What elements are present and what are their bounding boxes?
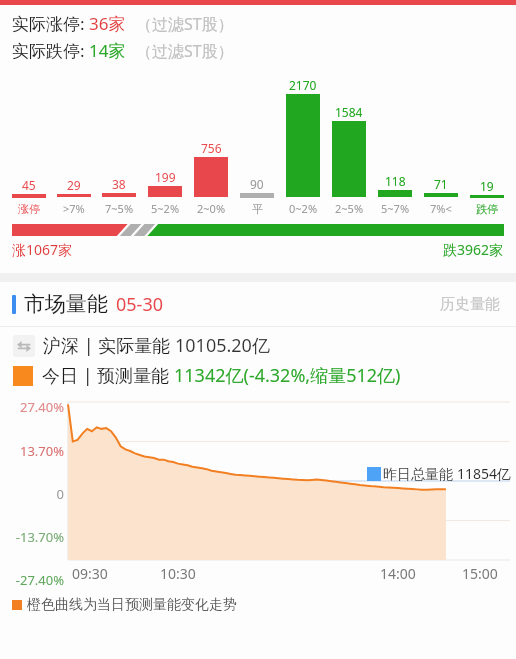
staticText: 199 [155,169,176,185]
staticText: 市场量能 [24,291,108,317]
staticText: 实际涨停: [12,12,89,35]
staticText: 涨停 [18,202,40,216]
staticText: 0~2% [289,201,318,216]
staticText: 15:00 [462,564,498,583]
staticText: 5~7% [381,201,410,216]
staticText: 今日 | 预测量能 [42,363,174,388]
staticText: 0 [0,485,64,503]
staticText: 09:30 [72,564,108,583]
button[interactable]: 历史量能 [436,291,504,318]
staticText: 7~5% [105,201,134,216]
staticText: 11342亿(-4.32%,缩量512亿) [174,363,401,388]
staticText: 118 [385,173,406,189]
staticText: 19 [480,178,494,194]
staticText: 36家 [89,12,126,35]
staticText: 14家 [89,39,126,62]
button[interactable]: 今日 | 预测量能 [13,363,503,388]
other: 切换 [13,335,35,357]
staticText: -13.70% [0,528,64,546]
staticText: 14:00 [380,564,416,583]
staticText: 涨1067家 [12,240,73,259]
staticText: 7%< [430,201,452,216]
staticText: 跌停 [476,202,498,216]
staticText: 跌3962家 [443,240,504,259]
staticText: 90 [250,176,264,192]
staticText: 2170 [289,77,317,93]
staticText: 11854亿 [457,464,512,483]
staticText: 平 [252,202,263,216]
staticText: 沪深 | 实际量能 [43,333,175,358]
staticText: 27.40% [0,398,64,416]
staticText: 2~5% [335,201,364,216]
staticText: （过滤ST股） [136,13,234,35]
staticText: 05-30 [116,292,163,317]
staticText: 历史量能 [440,295,500,314]
button[interactable]: 切换 [13,333,503,358]
staticText: 29 [67,177,81,193]
staticText: 2~0% [197,201,226,216]
staticText: -27.40% [0,571,64,589]
staticText: 71 [434,176,448,192]
staticText: >7% [63,201,85,216]
staticText: 13.70% [0,442,64,460]
staticText: 10:30 [160,564,196,583]
staticText: （过滤ST股） [136,40,234,62]
staticText: 橙色曲线为当日预测量能变化走势 [27,596,237,614]
staticText: 10105.20亿 [175,333,270,358]
staticText: 5~2% [151,201,180,216]
staticText: 38 [112,176,126,192]
staticText: 756 [201,140,222,156]
staticText: 实际跌停: [12,39,89,62]
staticText: 1584 [335,104,363,120]
staticText: 45 [22,177,36,193]
staticText: 昨日总量能 [383,464,457,483]
